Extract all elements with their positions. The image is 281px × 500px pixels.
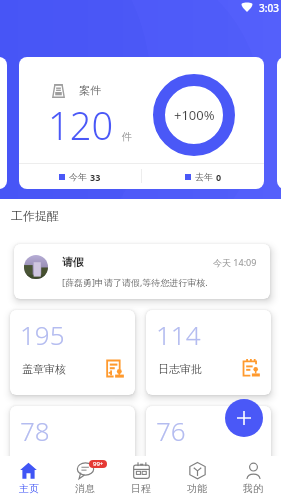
staticText: 76: [156, 413, 186, 448]
staticText: 主页: [19, 482, 39, 495]
staticText: 消息: [75, 482, 95, 495]
staticText: [薛磊勇]申请了请假,等待您进行审核.: [62, 276, 208, 288]
staticText: 78: [20, 413, 50, 448]
button[interactable]: 功能: [169, 456, 225, 500]
button[interactable]: 195: [10, 310, 135, 395]
staticText: 去年: [195, 171, 213, 182]
button[interactable]: 消息: [57, 456, 113, 500]
button[interactable]: 76: [146, 406, 271, 491]
staticText: 盖章审核: [22, 362, 66, 376]
staticText: 195: [20, 317, 65, 352]
staticText: 工作提醒: [11, 208, 59, 223]
button[interactable]: Add: [225, 399, 263, 437]
staticText: 今年: [69, 171, 87, 182]
button[interactable]: 日程: [113, 456, 169, 500]
button[interactable]: 主页: [0, 456, 57, 500]
button[interactable]: 我的: [225, 456, 281, 500]
staticText: +100%: [174, 106, 215, 124]
staticText: 99+: [93, 460, 104, 468]
staticText: 我的: [243, 482, 263, 495]
button[interactable]: 114: [146, 310, 271, 395]
button[interactable]: 请假: [14, 244, 270, 299]
staticText: 0: [216, 171, 222, 183]
staticText: 功能: [187, 482, 207, 495]
staticText: 件: [122, 130, 132, 143]
staticText: 日程: [131, 482, 151, 495]
staticText: 今天 14:09: [213, 256, 257, 268]
staticText: 120: [48, 99, 114, 151]
staticText: 33: [90, 171, 101, 183]
staticText: 日志审批: [158, 362, 202, 376]
staticText: 请假: [62, 255, 84, 269]
button[interactable]: 78: [10, 406, 135, 491]
button[interactable]: 案件: [19, 57, 264, 189]
staticText: 114: [156, 317, 201, 352]
staticText: 案件: [79, 83, 101, 97]
staticText: 3:03: [259, 1, 279, 15]
